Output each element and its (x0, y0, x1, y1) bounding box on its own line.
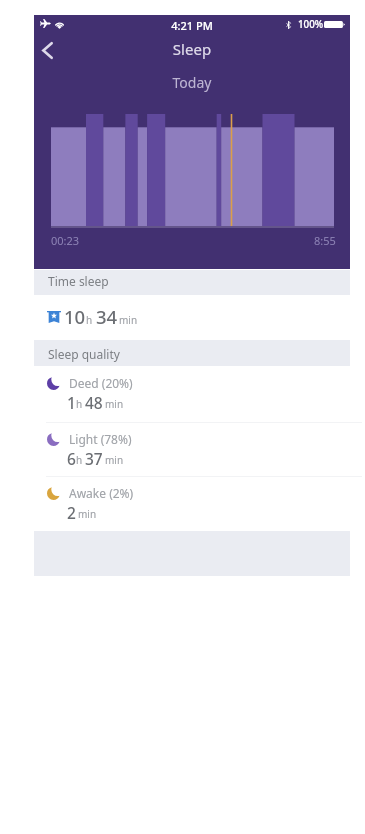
staticText: 8:55 (314, 233, 336, 248)
staticText: min (105, 397, 124, 411)
staticText: min (105, 453, 124, 467)
button[interactable]: 10 (34, 295, 350, 340)
button[interactable]: Awake (2%) (34, 476, 350, 531)
staticText: Sleep (34, 39, 350, 59)
staticText: h (76, 397, 83, 411)
staticText: Sleep quality (48, 346, 120, 362)
staticText: 1 (67, 392, 76, 413)
staticText: h (86, 313, 93, 327)
staticText: 4:21 PM (34, 18, 350, 33)
button[interactable]: Back (34, 36, 61, 66)
button[interactable]: Light (78%) (34, 422, 350, 477)
staticText: 6 (67, 448, 76, 469)
staticText: 48 (85, 392, 103, 413)
staticText: Today (34, 73, 350, 92)
staticText: min (119, 313, 138, 327)
staticText: Light (78%) (69, 431, 132, 447)
staticText: Deed (20%) (69, 375, 133, 391)
button[interactable]: Deed (20%) (34, 366, 350, 421)
staticText: 00:23 (51, 233, 80, 248)
staticText: 10 (64, 304, 86, 329)
staticText: Awake (2%) (69, 485, 134, 501)
staticText: 37 (85, 448, 103, 469)
staticText: 2 (67, 502, 76, 523)
staticText: h (76, 453, 83, 467)
staticText: min (78, 507, 97, 521)
staticText: Time sleep (48, 273, 109, 289)
staticText: 100% (298, 18, 324, 31)
staticText: 34 (96, 304, 118, 329)
